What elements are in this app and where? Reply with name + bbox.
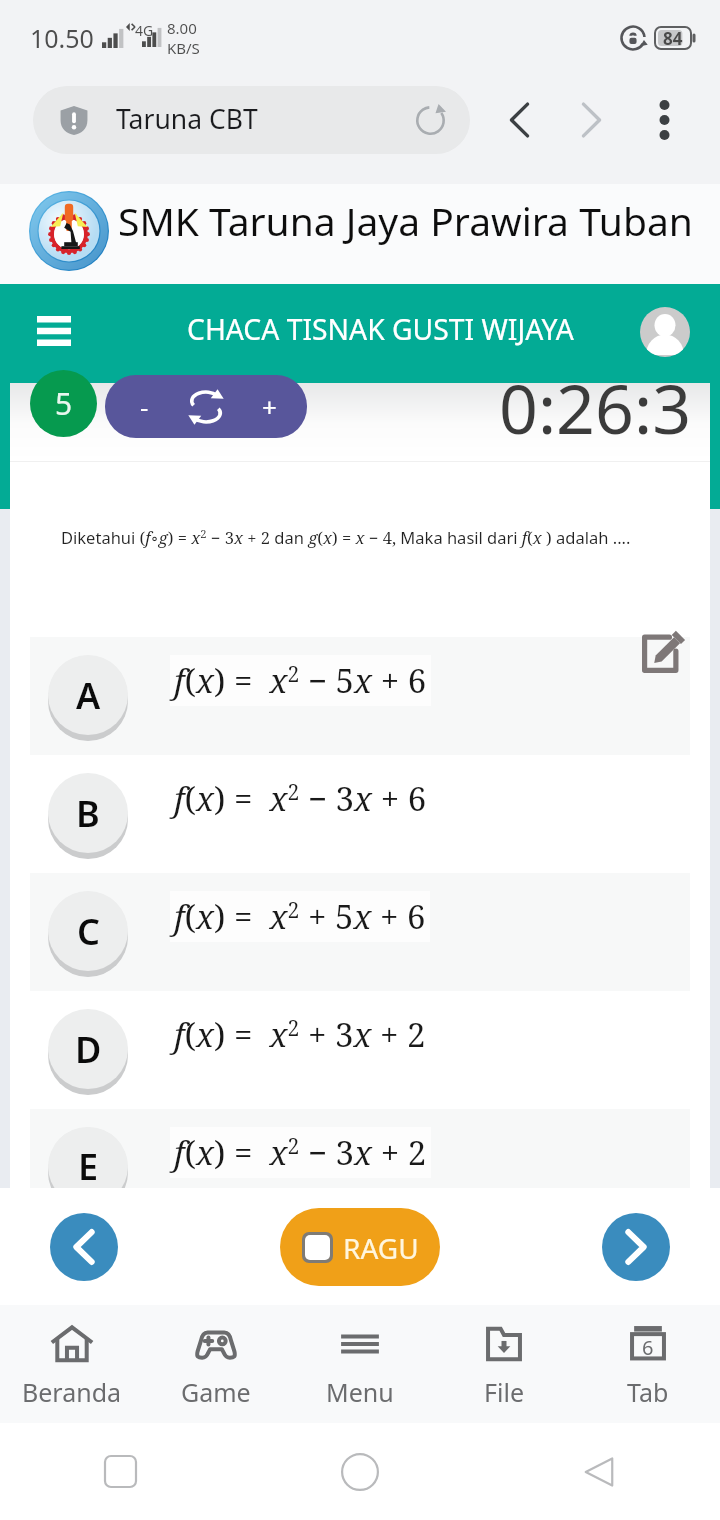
button[interactable]: Forward xyxy=(560,89,622,151)
staticText: f(x) = x2 − 3x + 2 xyxy=(174,1130,427,1175)
button[interactable]: B xyxy=(30,755,690,873)
staticText: CHACA TISNAK GUSTI WIJAYA xyxy=(187,310,574,349)
staticText: - xyxy=(140,389,149,424)
other: Back xyxy=(583,1455,617,1489)
button[interactable]: Menu xyxy=(20,302,88,366)
staticText: B xyxy=(76,789,100,838)
button[interactable]: Profile xyxy=(640,307,690,357)
staticText: f(x) = x2 − 3x + 6 xyxy=(174,776,427,821)
button[interactable]: Decrease xyxy=(120,375,168,438)
button[interactable]: E xyxy=(30,1109,690,1188)
button[interactable]: C xyxy=(30,873,690,991)
button[interactable]: 5 xyxy=(30,370,97,437)
other: Recents xyxy=(105,1456,136,1487)
staticText: KB/S xyxy=(167,38,200,58)
button[interactable]: More options xyxy=(633,89,695,151)
staticText: f(x) = x2 + 5x + 6 xyxy=(174,894,426,939)
staticText: f(x) = x2 − 5x + 6 xyxy=(174,658,427,703)
button[interactable]: Taruna CBT xyxy=(33,86,470,154)
button[interactable]: File xyxy=(432,1305,576,1423)
button[interactable]: RAGU xyxy=(280,1208,440,1286)
staticText: E xyxy=(78,1142,99,1191)
button[interactable]: Increase xyxy=(245,375,293,438)
staticText: Diketahui (f∘g) = x2 − 3x + 2 dan g(x) =… xyxy=(61,526,631,549)
staticText: RAGU xyxy=(343,1229,419,1267)
button[interactable]: Refresh xyxy=(182,375,230,438)
button[interactable]: A xyxy=(30,637,690,755)
staticText: SMK Taruna Jaya Prawira Tuban xyxy=(118,194,693,247)
staticText: 8.00 xyxy=(167,18,197,38)
button[interactable]: Next question xyxy=(602,1213,670,1281)
staticText: Game xyxy=(181,1375,251,1409)
button[interactable]: Beranda xyxy=(0,1305,144,1423)
other: Home xyxy=(341,1453,379,1491)
staticText: 4G xyxy=(135,21,154,40)
staticText: f(x) = x2 + 3x + 2 xyxy=(174,1012,426,1057)
staticText: Beranda xyxy=(22,1375,122,1409)
staticText: C xyxy=(77,907,100,956)
staticText: Menu xyxy=(326,1375,394,1409)
staticText: Tab xyxy=(627,1375,669,1409)
staticText: 6 xyxy=(642,1334,654,1361)
button[interactable]: 6 xyxy=(576,1305,720,1423)
button[interactable]: Edit note xyxy=(637,625,689,677)
staticText: 84 xyxy=(663,27,683,49)
staticText: A xyxy=(76,671,101,720)
other: Reload xyxy=(415,105,446,136)
button[interactable]: D xyxy=(30,991,690,1109)
staticText: + xyxy=(262,389,277,424)
button[interactable]: Game xyxy=(144,1305,288,1423)
button[interactable]: Previous question xyxy=(50,1213,118,1281)
staticText: Taruna CBT xyxy=(116,101,258,137)
staticText: D xyxy=(75,1025,102,1074)
staticText: 10.50 xyxy=(30,21,94,55)
staticText: File xyxy=(484,1375,524,1409)
staticText: 5 xyxy=(55,383,73,424)
staticText: 0:26:3 xyxy=(499,361,692,439)
button[interactable]: Back xyxy=(488,89,550,151)
button[interactable]: Menu xyxy=(288,1305,432,1423)
